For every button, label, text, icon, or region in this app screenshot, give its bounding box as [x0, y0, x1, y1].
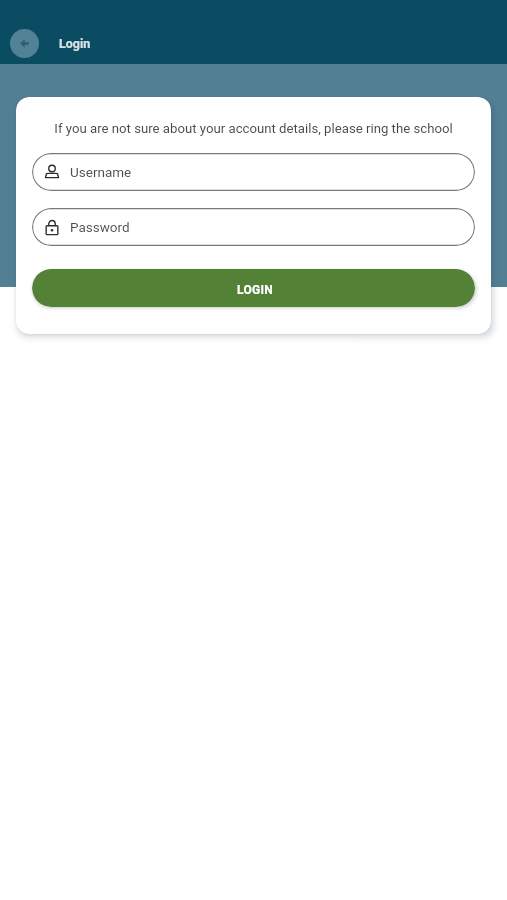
staticText: Username [70, 164, 132, 180]
staticText: Password [70, 219, 130, 235]
button[interactable]: Password [32, 208, 475, 246]
button[interactable]: Username [32, 153, 475, 191]
staticText: If you are not sure about your account d… [16, 121, 491, 136]
button[interactable]: LOGIN [32, 269, 475, 307]
staticText: Login [59, 36, 91, 51]
staticText: LOGIN [237, 283, 274, 297]
button[interactable]: Back [10, 29, 39, 58]
